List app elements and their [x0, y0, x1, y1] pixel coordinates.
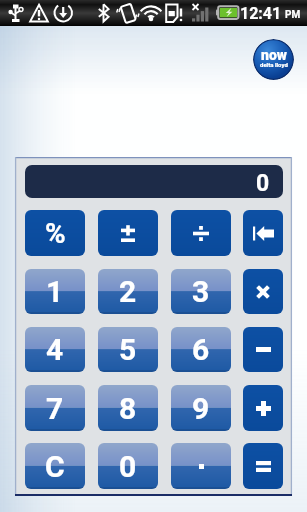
button[interactable]: Backspace: [243, 210, 283, 256]
staticText: 12:41: [240, 4, 282, 23]
staticText: now: [261, 47, 287, 63]
staticText: 5: [119, 332, 137, 367]
staticText: C: [45, 449, 65, 484]
staticText: 0: [119, 449, 137, 484]
button[interactable]: 5: [98, 327, 158, 372]
staticText: delta lloyd: [260, 61, 288, 68]
staticText: 8: [119, 391, 137, 426]
button[interactable]: now delta lloyd: [253, 39, 294, 80]
staticText: 1: [46, 274, 64, 309]
button[interactable]: 3: [171, 269, 231, 314]
button[interactable]: 4: [25, 327, 85, 372]
button[interactable]: 2: [98, 269, 158, 314]
staticText: 7: [46, 391, 64, 426]
button[interactable]: 8: [98, 385, 158, 431]
staticText: 9: [192, 391, 210, 426]
button[interactable]: Subtract: [243, 327, 283, 372]
button[interactable]: C: [25, 443, 85, 489]
staticText: 2: [119, 274, 137, 309]
button[interactable]: decimal point: [171, 443, 231, 489]
staticText: PM: [285, 9, 301, 21]
button[interactable]: Percent: [25, 210, 85, 256]
staticText: %: [45, 217, 66, 250]
staticText: 4: [46, 332, 64, 367]
button[interactable]: Multiply: [243, 269, 283, 314]
button[interactable]: Display: [25, 165, 283, 198]
button[interactable]: Equals: [243, 443, 283, 489]
staticText: 0: [256, 170, 270, 197]
button[interactable]: 1: [25, 269, 85, 314]
staticText: 6: [192, 332, 210, 367]
button[interactable]: Divide: [171, 210, 231, 256]
staticText: 3: [192, 274, 210, 309]
button[interactable]: 9: [171, 385, 231, 431]
button[interactable]: 6: [171, 327, 231, 372]
button[interactable]: Add: [243, 385, 283, 431]
button[interactable]: 7: [25, 385, 85, 431]
button[interactable]: 0: [98, 443, 158, 489]
button[interactable]: Plus minus: [98, 210, 158, 256]
